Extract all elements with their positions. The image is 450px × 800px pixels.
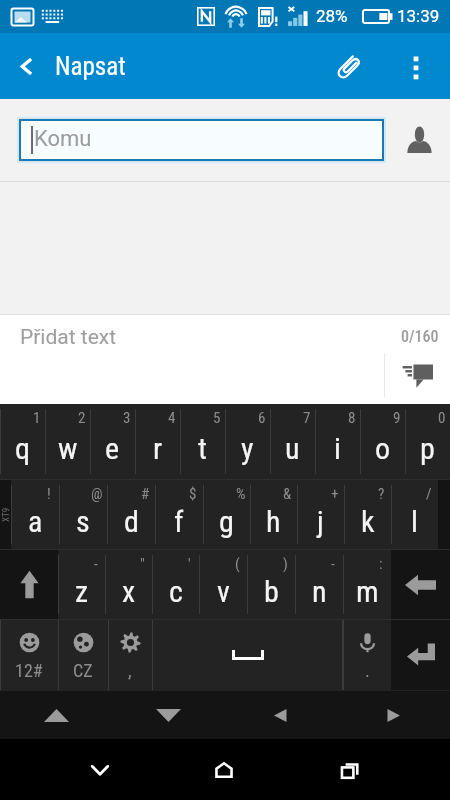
staticText: 0 <box>438 409 446 427</box>
staticText: w <box>58 431 78 466</box>
staticText: @ <box>91 485 103 503</box>
button[interactable]: / <box>391 480 438 549</box>
button[interactable]: Backspace <box>391 550 450 619</box>
staticText: c <box>169 574 183 609</box>
button[interactable]: Move down <box>112 691 224 739</box>
button[interactable]: Enter <box>391 620 450 690</box>
staticText: 6 <box>258 409 266 427</box>
staticText: Přidat text <box>20 325 117 350</box>
button[interactable]: Send message <box>386 349 450 403</box>
button[interactable]: 3 <box>90 404 135 479</box>
button[interactable]: ? <box>344 480 391 549</box>
staticText: o <box>375 431 391 466</box>
staticText: ( <box>235 555 240 573</box>
staticText: j <box>317 504 324 539</box>
button[interactable]: Hide keyboard <box>72 742 128 798</box>
button[interactable]: Settings <box>108 620 152 690</box>
staticText: ) <box>283 555 288 573</box>
button[interactable]: Change language <box>58 620 108 690</box>
button[interactable]: - <box>58 550 105 619</box>
staticText: p <box>420 431 435 466</box>
button[interactable]: Space <box>152 620 343 690</box>
staticText: d <box>124 504 139 539</box>
button[interactable]: Move left <box>224 691 337 739</box>
staticText: x <box>122 574 136 609</box>
button[interactable]: More options <box>393 33 438 99</box>
button[interactable]: 7 <box>270 404 315 479</box>
button[interactable]: & <box>250 480 297 549</box>
button[interactable]: # <box>107 480 155 549</box>
staticText: u <box>285 431 300 466</box>
button[interactable]: Move up <box>0 691 112 739</box>
staticText: t <box>198 431 207 466</box>
staticText: " <box>140 555 145 573</box>
button[interactable]: 4 <box>135 404 180 479</box>
staticText: , <box>128 660 132 681</box>
button[interactable]: @ <box>59 480 107 549</box>
staticText: z <box>75 574 89 609</box>
button[interactable]: % <box>203 480 250 549</box>
button[interactable]: Emoji <box>0 620 58 690</box>
staticText: 9 <box>393 409 401 427</box>
staticText: f <box>174 504 184 539</box>
button[interactable]: XT9 <box>0 480 11 549</box>
staticText: m <box>356 574 379 609</box>
button[interactable]: Move right <box>337 691 450 739</box>
staticText: & <box>283 485 292 503</box>
staticText: 7 <box>303 409 311 427</box>
button[interactable]: 6 <box>225 404 270 479</box>
staticText: ! <box>47 485 51 503</box>
staticText: 28% <box>316 6 348 26</box>
button[interactable]: $ <box>155 480 203 549</box>
staticText: : <box>379 555 383 573</box>
staticText: l <box>411 504 418 539</box>
staticText: - <box>94 555 98 573</box>
button[interactable]: " <box>105 550 152 619</box>
staticText: 1 <box>33 409 41 427</box>
staticText: y <box>241 431 254 466</box>
button[interactable]: Attach <box>325 33 375 99</box>
button[interactable]: Recent apps <box>322 742 378 798</box>
staticText: s <box>76 504 90 539</box>
staticText: 0/160 <box>401 327 439 346</box>
button[interactable]: 0 <box>405 404 450 479</box>
staticText: $ <box>189 485 197 503</box>
staticText: XT9 <box>1 507 12 522</box>
button[interactable]: ' <box>152 550 199 619</box>
button[interactable]: Shift <box>0 550 58 619</box>
staticText: 8 <box>348 409 356 427</box>
button[interactable]: Home <box>196 742 252 798</box>
button[interactable]: ! <box>11 480 59 549</box>
button[interactable]: Komu <box>19 119 384 161</box>
button[interactable]: Choose contact <box>388 98 450 180</box>
staticText: r <box>153 431 163 466</box>
button[interactable]: 8 <box>315 404 360 479</box>
staticText: q <box>15 431 31 466</box>
button[interactable]: 9 <box>360 404 405 479</box>
button[interactable]: Back <box>0 33 52 99</box>
button[interactable]: Voice input <box>343 620 391 690</box>
staticText: g <box>219 504 234 539</box>
staticText: v <box>217 574 230 609</box>
staticText: a <box>28 504 43 539</box>
staticText: Napsat <box>55 52 126 81</box>
button[interactable]: 1 <box>0 404 45 479</box>
staticText: - <box>331 555 335 573</box>
button[interactable]: ( <box>199 550 247 619</box>
button[interactable]: : <box>343 550 391 619</box>
staticText: CZ <box>73 660 93 681</box>
staticText: Komu <box>34 126 92 152</box>
staticText: . <box>365 660 370 681</box>
staticText: 12# <box>15 660 43 681</box>
staticText: k <box>361 504 375 539</box>
staticText: 4 <box>168 409 176 427</box>
staticText: b <box>264 574 279 609</box>
button[interactable]: - <box>295 550 343 619</box>
button[interactable]: 2 <box>45 404 90 479</box>
button[interactable]: + <box>297 480 344 549</box>
staticText: n <box>312 574 327 609</box>
staticText: # <box>141 485 150 503</box>
button[interactable]: ) <box>247 550 295 619</box>
button[interactable]: 5 <box>180 404 225 479</box>
staticText: 2 <box>78 409 86 427</box>
